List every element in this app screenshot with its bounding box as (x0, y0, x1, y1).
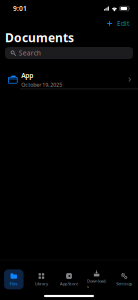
staticText: October 19, 2025 (21, 81, 62, 88)
staticText: 9:01 (13, 4, 27, 13)
staticText: Search (19, 49, 41, 57)
button[interactable]: Edit (116, 18, 130, 29)
staticText: App (21, 71, 33, 80)
button[interactable]: App (0, 61, 138, 89)
button[interactable]: Library (28, 269, 55, 289)
button[interactable]: App Store (55, 269, 83, 289)
staticText: Files (10, 281, 18, 286)
staticText: Edit (117, 19, 129, 28)
staticText: Settings (116, 281, 132, 286)
button[interactable]: Downloads (83, 267, 110, 292)
staticText: App Store (60, 281, 78, 286)
staticText: Library (35, 281, 48, 286)
staticText: Downloads (87, 278, 106, 289)
staticText: Documents (5, 29, 74, 45)
button[interactable]: Files (0, 269, 28, 289)
button[interactable]: Settings (110, 269, 138, 289)
button[interactable]: Add (106, 19, 113, 28)
